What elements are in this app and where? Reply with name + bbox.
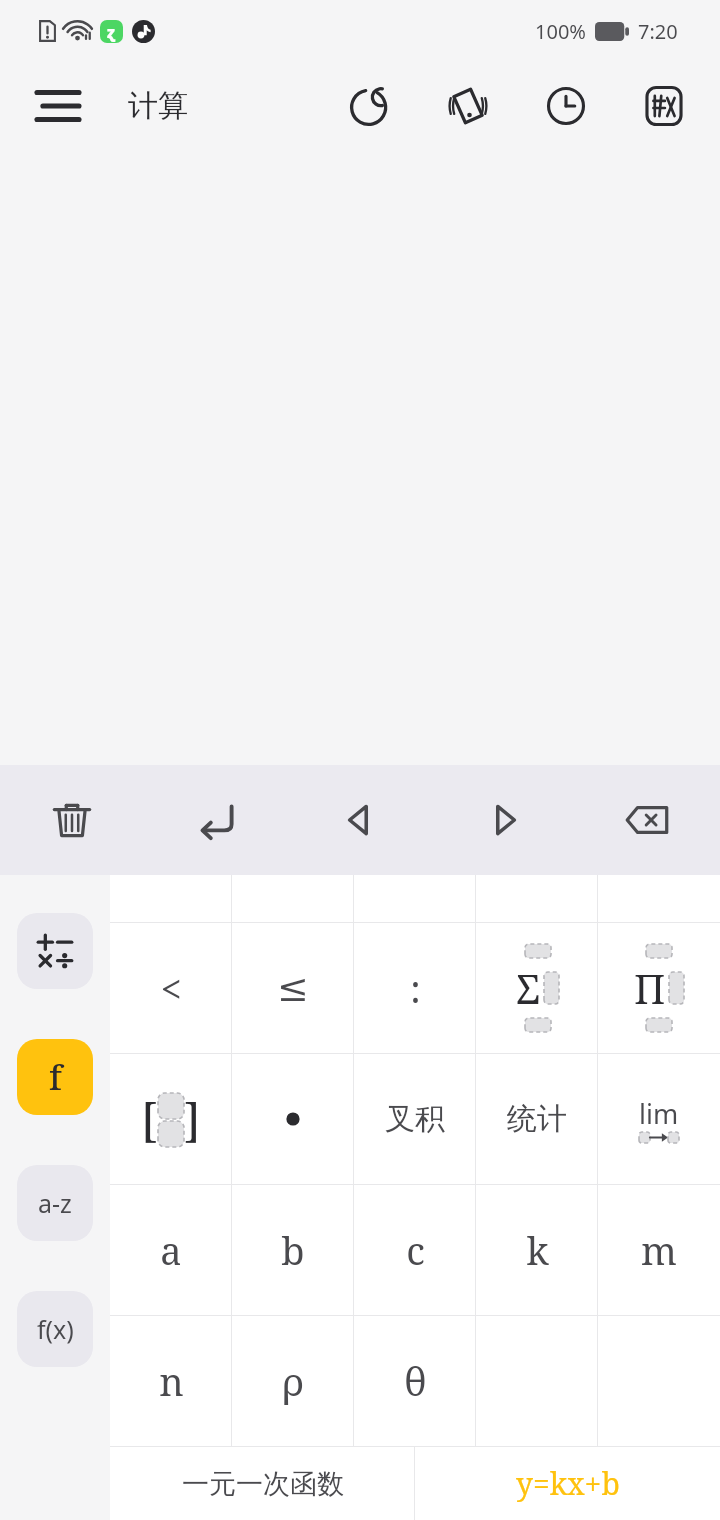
staticText: Σ xyxy=(516,961,541,1015)
staticText: Π xyxy=(634,961,666,1015)
button[interactable]: 叉积 xyxy=(354,1054,476,1184)
staticText: 叉积 xyxy=(385,1100,445,1138)
button[interactable]: Move left xyxy=(288,765,432,875)
staticText: k xyxy=(526,1224,549,1276)
staticText: θ xyxy=(404,1355,427,1407)
staticText: ≤ xyxy=(277,966,309,1010)
button[interactable]: n xyxy=(110,1316,232,1446)
staticText: lim xyxy=(639,1095,679,1132)
staticText: 一元一次函数 xyxy=(182,1467,344,1501)
staticText: < xyxy=(160,962,182,1014)
staticText: m xyxy=(641,1224,677,1276)
button[interactable]: History xyxy=(538,78,594,134)
staticText: f(x) xyxy=(37,1312,74,1346)
button[interactable]: y=kx+b xyxy=(415,1447,720,1520)
button[interactable]: ρ xyxy=(232,1316,354,1446)
button[interactable]: < xyxy=(110,923,232,1053)
button[interactable] xyxy=(17,913,93,989)
staticText: f xyxy=(49,1054,62,1100)
button[interactable]: a-z xyxy=(17,1165,93,1241)
button[interactable]: Clear all xyxy=(0,765,144,875)
button[interactable]: Backspace xyxy=(576,765,720,875)
staticText: c xyxy=(406,1224,425,1276)
staticText: n xyxy=(159,1355,184,1407)
button[interactable]: b xyxy=(232,1185,354,1315)
staticText: 统计 xyxy=(507,1100,567,1138)
button[interactable]: Σ xyxy=(476,923,598,1053)
staticText: a xyxy=(160,1224,182,1276)
button[interactable]: 统计 xyxy=(476,1054,598,1184)
button[interactable]: Π xyxy=(598,923,720,1053)
button[interactable]: Newline xyxy=(144,765,288,875)
button[interactable]: m xyxy=(598,1185,720,1315)
button[interactable]: Dark mode xyxy=(342,78,398,134)
button[interactable]: f xyxy=(17,1039,93,1115)
button[interactable]: k xyxy=(476,1185,598,1315)
button[interactable]: θ xyxy=(354,1316,476,1446)
button[interactable]: ≤ xyxy=(232,923,354,1053)
staticText: [ xyxy=(141,1088,158,1151)
button[interactable]: f(x) xyxy=(17,1291,93,1367)
staticText: ] xyxy=(184,1088,201,1151)
button[interactable]: [ xyxy=(110,1054,232,1184)
staticText: ɀ xyxy=(107,21,116,43)
button[interactable]: Move right xyxy=(432,765,576,875)
button[interactable]: : xyxy=(354,923,476,1053)
staticText: : xyxy=(410,962,421,1014)
staticText: 计算 xyxy=(128,87,188,125)
button[interactable]: lim xyxy=(598,1054,720,1184)
staticText: b xyxy=(281,1224,305,1276)
staticText: a-z xyxy=(38,1186,72,1220)
button[interactable]: a xyxy=(110,1185,232,1315)
button[interactable] xyxy=(232,1054,354,1184)
button[interactable]: 一元一次函数 xyxy=(110,1447,415,1520)
button[interactable]: c xyxy=(354,1185,476,1315)
button[interactable]: Number mode xyxy=(636,78,692,134)
button[interactable]: Menu xyxy=(24,72,92,140)
staticText: 100% xyxy=(535,18,586,45)
staticText: ρ xyxy=(282,1355,304,1407)
staticText: y=kx+b xyxy=(516,1463,620,1504)
button[interactable]: Shake to clear xyxy=(440,78,496,134)
staticText: 7:20 xyxy=(638,18,678,45)
